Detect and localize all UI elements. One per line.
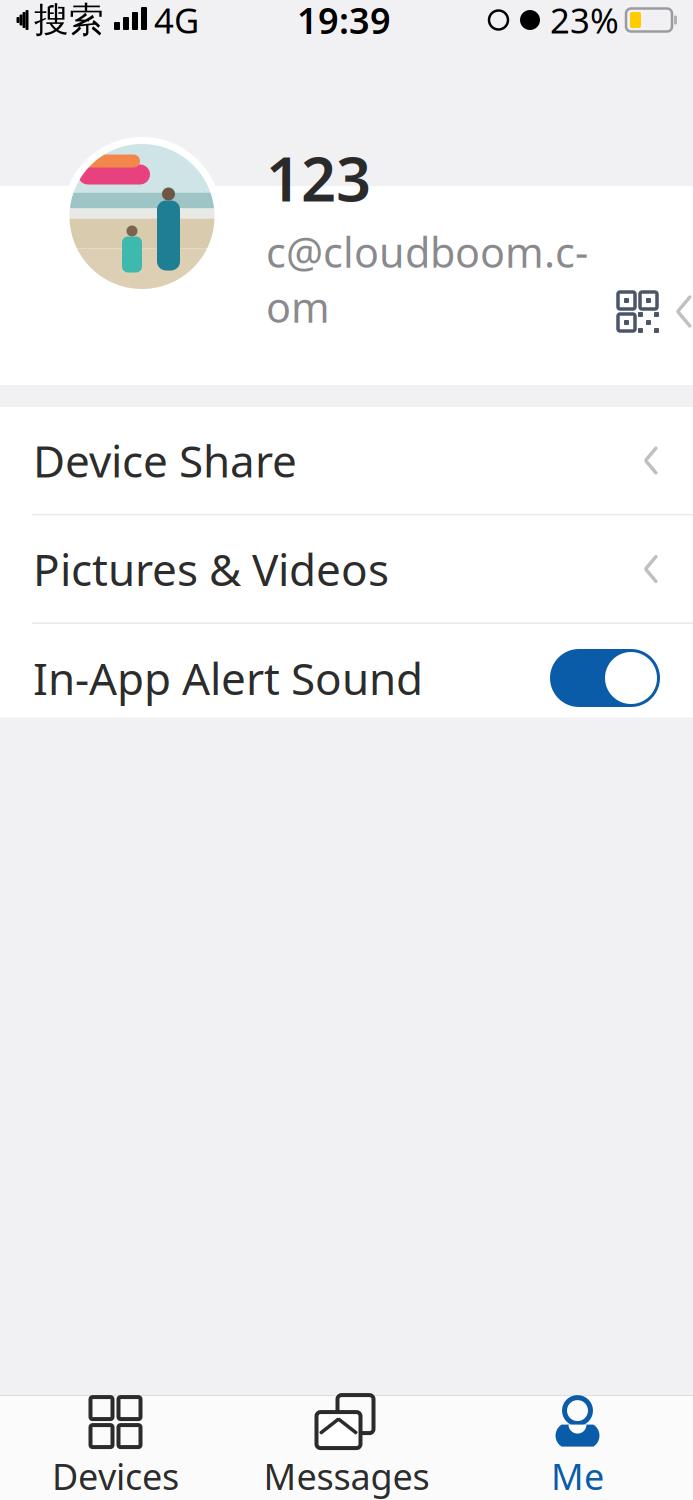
staticText: 19:39: [297, 0, 391, 44]
staticText: 23%: [550, 0, 619, 43]
staticText: 搜索: [34, 0, 104, 41]
button[interactable]: In-App Alert Sound: [0, 624, 693, 732]
button[interactable]: Me: [462, 1388, 693, 1500]
staticText: Device Share: [33, 431, 297, 490]
staticText: 123: [266, 137, 371, 218]
button[interactable]: 123: [0, 40, 693, 385]
button[interactable]: Device Share: [0, 407, 693, 515]
button[interactable]: Pictures & Videos: [0, 515, 693, 624]
staticText: Devices: [52, 1452, 179, 1500]
staticText: Messages: [263, 1452, 429, 1500]
staticText: Me: [551, 1452, 604, 1500]
staticText: c@cloudboom.com: [266, 224, 588, 334]
staticText: 4G: [154, 0, 199, 43]
staticText: In-App Alert Sound: [33, 649, 423, 707]
button[interactable]: Messages: [231, 1388, 462, 1500]
staticText: Pictures & Videos: [33, 540, 389, 598]
button[interactable]: Devices: [0, 1388, 231, 1500]
